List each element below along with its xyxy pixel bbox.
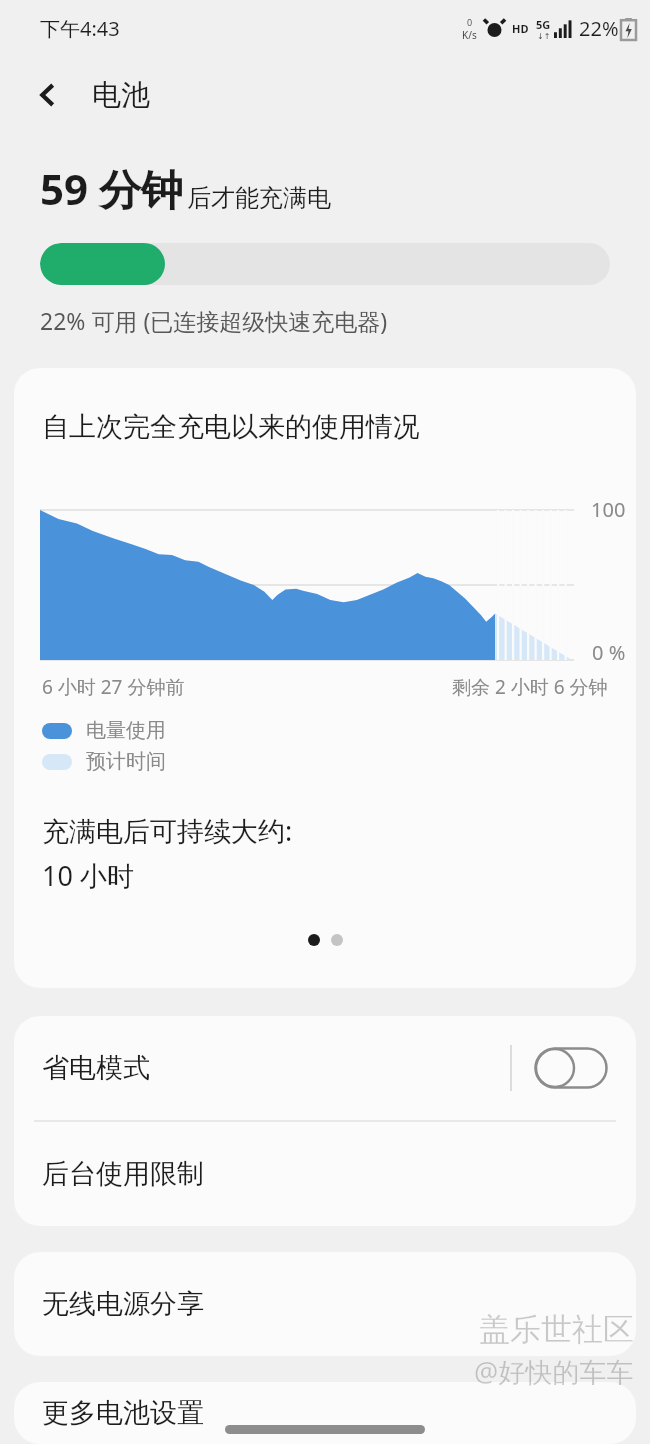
staticText: 后台使用限制 xyxy=(42,1157,204,1191)
button[interactable]: 后台使用限制 xyxy=(14,1122,636,1226)
staticText: 预计时间 xyxy=(86,749,166,774)
button[interactable]: 无线电源分享 xyxy=(14,1252,636,1356)
staticText: 10 小时 xyxy=(42,857,134,894)
staticText: 充满电后可持续大约: xyxy=(42,812,293,849)
staticText: 59 分钟 xyxy=(40,160,183,217)
staticText: 下午4:43 xyxy=(40,15,120,42)
staticText: 0 xyxy=(467,16,473,28)
staticText: 6 小时 27 分钟前 xyxy=(42,674,185,700)
staticText: 剩余 2 小时 6 分钟 xyxy=(452,674,608,700)
button[interactable]: 更多电池设置 xyxy=(14,1382,636,1444)
staticText: 22% xyxy=(579,15,619,42)
staticText: 5G xyxy=(536,17,551,32)
staticText: 电池 xyxy=(92,77,150,114)
button[interactable]: 省电模式 xyxy=(14,1016,636,1120)
button[interactable]: Back xyxy=(22,69,74,121)
staticText: HD xyxy=(512,21,529,36)
staticText: ↓↑ xyxy=(537,32,551,41)
button[interactable]: 自上次完全充电以来的使用情况 xyxy=(14,368,636,988)
staticText: 电量使用 xyxy=(86,718,166,743)
staticText: 自上次完全充电以来的使用情况 xyxy=(42,410,420,444)
staticText: 盖乐世社区 xyxy=(479,1310,634,1349)
staticText: 更多电池设置 xyxy=(42,1396,204,1430)
staticText: 无线电源分享 xyxy=(42,1287,204,1321)
staticText: 后才能充满电 xyxy=(187,183,331,213)
staticText: 省电模式 xyxy=(42,1051,150,1085)
button[interactable]: Power saving toggle xyxy=(534,1047,608,1089)
staticText: 0 % xyxy=(592,639,626,666)
staticText: 100 xyxy=(591,496,626,523)
staticText: 22% 可用 (已连接超级快速充电器) xyxy=(40,305,388,336)
staticText: @好快的车车 xyxy=(474,1353,634,1390)
staticText: K/s xyxy=(462,28,477,42)
